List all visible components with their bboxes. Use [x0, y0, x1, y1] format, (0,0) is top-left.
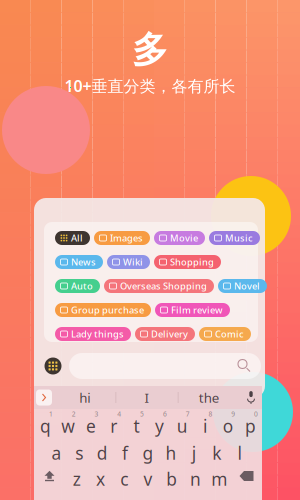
staticText: 4 [117, 409, 121, 418]
button[interactable]: News [55, 255, 103, 269]
button[interactable]: 4 [102, 409, 125, 437]
staticText: w [61, 414, 75, 437]
button[interactable]: Lady things [55, 327, 131, 341]
button[interactable]: hi [54, 386, 115, 409]
button[interactable]: 9 [216, 409, 239, 437]
button[interactable]: Novel [218, 279, 267, 293]
button[interactable]: 3 [80, 409, 102, 437]
staticText: Delivery [151, 328, 188, 340]
staticText: 10+垂直分类，各有所长 [64, 75, 235, 96]
button[interactable]: Comic [199, 327, 251, 341]
button[interactable]: m [207, 463, 231, 489]
staticText: Images [110, 232, 143, 244]
staticText: 0 [254, 409, 258, 418]
staticText: 多 [132, 28, 168, 72]
button[interactable]: Group purchase [55, 303, 151, 317]
button[interactable]: Auto [55, 279, 100, 293]
staticText: s [75, 441, 83, 464]
staticText: 2 [72, 409, 76, 418]
staticText: Comic [215, 328, 244, 340]
button[interactable]: 6 [148, 409, 171, 437]
staticText: c [120, 467, 128, 490]
button[interactable]: v [136, 463, 160, 489]
button[interactable]: Movie [154, 231, 205, 245]
staticText: j [192, 441, 196, 464]
button[interactable]: 0 [239, 409, 262, 437]
staticText: y [155, 414, 164, 437]
staticText: 1 [49, 409, 53, 418]
button[interactable]: k [205, 437, 228, 463]
staticText: Lady things [71, 328, 124, 340]
staticText: I [144, 389, 149, 406]
staticText: i [203, 414, 207, 437]
staticText: v [143, 467, 152, 490]
staticText: hi [79, 389, 90, 406]
button[interactable]: 8 [194, 409, 216, 437]
staticText: m [211, 467, 227, 490]
button[interactable]: z [65, 463, 89, 489]
staticText: x [96, 467, 105, 490]
staticText: Overseas Shopping [120, 280, 207, 292]
button[interactable]: 2 [57, 409, 80, 437]
staticText: r [110, 414, 117, 437]
staticText: Movie [170, 232, 198, 244]
staticText: f [122, 441, 128, 464]
staticText: Shopping [170, 256, 214, 268]
staticText: the [199, 389, 220, 406]
button[interactable]: Music [209, 231, 260, 245]
staticText: q [40, 414, 51, 437]
button[interactable]: Images [94, 231, 150, 245]
staticText: Novel [234, 280, 260, 292]
button[interactable]: l [228, 437, 251, 463]
button[interactable]: More suggestions [34, 386, 54, 409]
button[interactable]: I [116, 386, 178, 409]
staticText: u [177, 414, 188, 437]
button[interactable]: Shift [34, 463, 65, 489]
button[interactable]: 1 [34, 409, 57, 437]
button[interactable]: a [45, 437, 68, 463]
button[interactable]: the [178, 386, 240, 409]
staticText: 9 [231, 409, 235, 418]
button[interactable]: s [68, 437, 91, 463]
staticText: All [71, 232, 83, 244]
button[interactable]: Apps [44, 357, 62, 375]
button[interactable]: h [159, 437, 182, 463]
button[interactable]: 5 [125, 409, 148, 437]
staticText: o [223, 414, 233, 437]
button[interactable]: Overseas Shopping [104, 279, 214, 293]
button[interactable]: Wiki [107, 255, 150, 269]
button[interactable]: Search [69, 353, 261, 379]
button[interactable]: g [137, 437, 159, 463]
staticText: h [165, 441, 176, 464]
staticText: l [238, 441, 242, 464]
button[interactable]: Dictate [240, 386, 262, 409]
button[interactable]: j [182, 437, 205, 463]
button[interactable]: c [112, 463, 136, 489]
staticText: Auto [71, 280, 93, 292]
button[interactable]: d [91, 437, 114, 463]
button[interactable]: 7 [171, 409, 194, 437]
button[interactable]: All [55, 231, 90, 245]
button[interactable]: x [89, 463, 112, 489]
staticText: Film review [171, 304, 223, 316]
staticText: Wiki [123, 256, 143, 268]
button[interactable]: Shopping [154, 255, 221, 269]
staticText: g [142, 441, 153, 464]
button[interactable]: f [114, 437, 137, 463]
staticText: b [166, 467, 177, 490]
staticText: 8 [208, 409, 212, 418]
staticText: Group purchase [71, 304, 144, 316]
button[interactable]: n [184, 463, 207, 489]
button[interactable]: Delete [231, 463, 262, 489]
staticText: a [51, 441, 61, 464]
button[interactable]: b [160, 463, 184, 489]
staticText: News [71, 256, 96, 268]
staticText: 6 [163, 409, 167, 418]
staticText: 5 [140, 409, 144, 418]
button[interactable]: Film review [155, 303, 230, 317]
staticText: n [190, 467, 201, 490]
staticText: d [97, 441, 108, 464]
staticText: t [134, 414, 140, 437]
button[interactable]: Delivery [135, 327, 195, 341]
staticText: 7 [186, 409, 190, 418]
